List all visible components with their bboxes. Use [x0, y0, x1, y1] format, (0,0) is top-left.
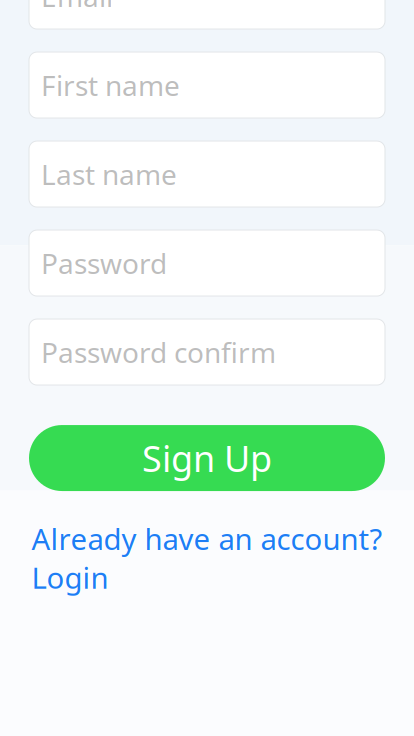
staticText: Password: [41, 244, 167, 282]
staticText: Already have an account? Login: [31, 519, 382, 597]
staticText: First name: [41, 66, 180, 104]
button[interactable]: First name: [29, 52, 385, 118]
button[interactable]: Email: [29, 0, 385, 29]
staticText: Password confirm: [41, 333, 276, 371]
button[interactable]: Password confirm: [29, 319, 385, 385]
button[interactable]: Password: [29, 230, 385, 296]
button[interactable]: Already have an account? Login: [19, 513, 394, 603]
staticText: Sign Up: [142, 434, 272, 482]
button[interactable]: Last name: [29, 141, 385, 207]
button[interactable]: Sign Up: [29, 425, 385, 491]
staticText: Last name: [41, 155, 177, 193]
staticText: Email: [41, 0, 113, 15]
